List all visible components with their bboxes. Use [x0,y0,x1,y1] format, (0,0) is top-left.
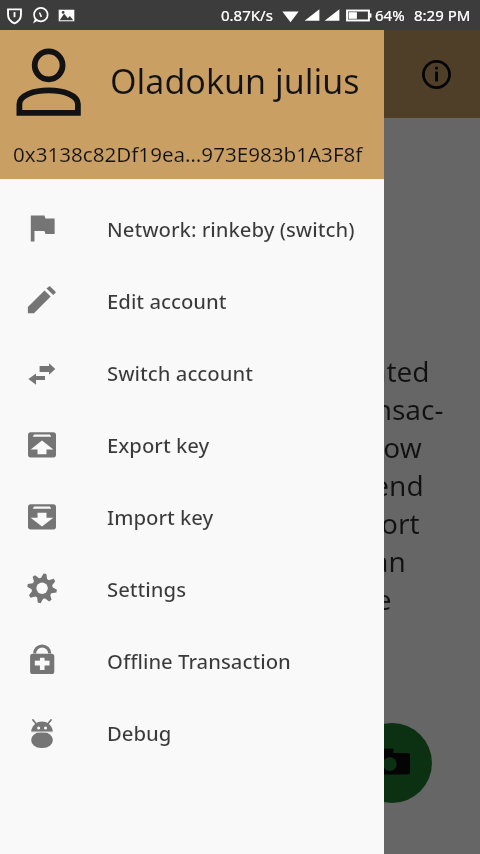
staticText: 0x3138c82Df19ea…973E983b1A3F8f [13,140,363,168]
button[interactable]: Offline Transaction [0,625,384,697]
staticText: Import key [107,503,214,531]
staticText: Settings [107,575,187,603]
button[interactable]: Network: rinkeby (switch) [0,193,384,265]
button[interactable]: Settings [0,553,384,625]
staticText: any account yet. To do transac- [37,390,444,428]
staticText: Oladokun julius [110,58,360,104]
staticText: account by tapping the [89,580,392,618]
staticText: Network: rinkeby (switch) [107,215,355,243]
staticText: button below [153,618,328,656]
staticText: Export key [107,431,210,459]
staticText: You have not any yet created [50,352,430,390]
button[interactable]: Scan QR code [352,723,432,803]
button[interactable]: Debug [0,697,384,769]
button[interactable]: Export key [0,409,384,481]
button[interactable]: Import key [0,481,384,553]
staticText: You can also import or send [57,466,424,504]
button[interactable]: Switch account [0,337,384,409]
staticText: Debug [107,719,172,747]
staticText: Offline Transaction [107,647,291,675]
staticText: 64% [375,5,405,25]
staticText: or also the private key an [75,542,406,580]
staticText: 8:29 PM [414,5,471,25]
staticText: 0.87K/s [221,5,273,25]
staticText: Edit account [107,287,227,315]
staticText: Switch account [107,359,253,387]
button[interactable]: Info [414,52,458,96]
staticText: ting, create an account now [58,428,422,466]
button[interactable]: Edit account [0,265,384,337]
staticText: an existing account, import [61,504,420,542]
